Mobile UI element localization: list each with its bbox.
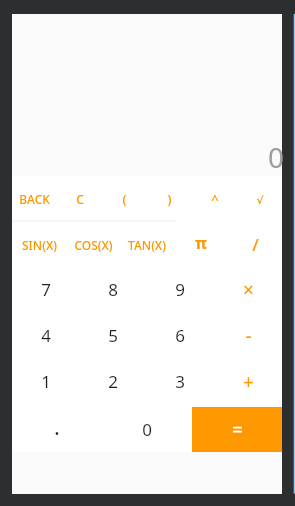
staticText: 9 xyxy=(175,278,185,301)
staticText: √ xyxy=(256,194,264,206)
staticText: BACK xyxy=(19,191,50,207)
staticText: 2 xyxy=(108,370,118,393)
button[interactable]: 5 xyxy=(79,314,146,360)
staticText: 4 xyxy=(41,324,51,347)
staticText: 0 xyxy=(142,418,152,441)
button[interactable]: 0 xyxy=(12,14,282,176)
staticText: SIN(X) xyxy=(22,237,57,253)
button[interactable]: BACK xyxy=(12,176,57,222)
staticText: + xyxy=(243,369,254,395)
staticText: π xyxy=(195,232,207,254)
button[interactable]: 4 xyxy=(12,314,79,360)
button[interactable]: C xyxy=(57,176,102,222)
staticText: 1 xyxy=(41,370,51,393)
button[interactable]: 0 xyxy=(102,406,192,452)
button[interactable]: TAN(X) xyxy=(120,222,174,268)
button[interactable]: 1 xyxy=(12,360,79,406)
button[interactable]: - xyxy=(214,314,282,360)
button[interactable]: 7 xyxy=(12,268,79,314)
button[interactable]: . xyxy=(12,406,102,452)
button[interactable]: / xyxy=(228,222,282,268)
button[interactable]: 3 xyxy=(146,360,214,406)
button[interactable]: 9 xyxy=(146,268,214,314)
button[interactable]: ^ xyxy=(192,176,237,222)
staticText: 8 xyxy=(108,278,118,301)
button[interactable]: 2 xyxy=(79,360,146,406)
staticText: 6 xyxy=(175,324,185,347)
button[interactable]: × xyxy=(214,268,282,314)
staticText: 5 xyxy=(108,324,118,347)
staticText: . xyxy=(54,411,60,441)
button[interactable]: π xyxy=(174,222,228,268)
button[interactable]: ) xyxy=(147,176,192,222)
staticText: ) xyxy=(167,190,172,208)
staticText: 7 xyxy=(41,278,51,301)
button[interactable]: + xyxy=(214,360,282,406)
staticText: TAN(X) xyxy=(128,237,166,253)
button[interactable]: COS(X) xyxy=(66,222,120,268)
button[interactable]: ( xyxy=(102,176,147,222)
staticText: / xyxy=(252,233,259,256)
staticText: C xyxy=(76,191,84,207)
button[interactable]: = xyxy=(192,407,282,452)
staticText: COS(X) xyxy=(74,237,113,253)
staticText: × xyxy=(243,277,254,303)
staticText: ^ xyxy=(211,190,219,208)
staticText: ( xyxy=(122,190,127,208)
staticText: = xyxy=(232,417,243,443)
staticText: 0 xyxy=(268,138,285,176)
staticText: 3 xyxy=(175,370,185,393)
button[interactable]: 8 xyxy=(79,268,146,314)
button[interactable]: 6 xyxy=(146,314,214,360)
staticText: - xyxy=(245,323,252,349)
button[interactable]: √ xyxy=(237,176,282,222)
button[interactable]: SIN(X) xyxy=(12,222,66,268)
